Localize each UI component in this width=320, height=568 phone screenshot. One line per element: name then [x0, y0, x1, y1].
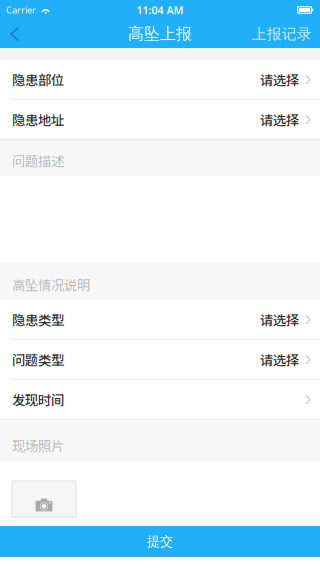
button[interactable]: 隐患地址: [0, 100, 320, 139]
button[interactable]: 发现时间: [0, 380, 320, 419]
staticText: 隐患部位: [12, 70, 64, 89]
staticText: 提交: [147, 533, 173, 550]
staticText: Carrier: [6, 4, 36, 16]
button[interactable]: 隐患类型: [0, 300, 320, 339]
staticText: 请选择: [260, 110, 299, 129]
button[interactable]: Back: [0, 20, 44, 48]
staticText: 请选择: [260, 70, 299, 89]
button[interactable]: 问题类型: [0, 340, 320, 379]
staticText: 隐患类型: [12, 310, 64, 329]
staticText: 11:04 AM: [136, 3, 183, 17]
staticText: 上报记录: [252, 25, 312, 43]
staticText: 隐患地址: [12, 110, 64, 129]
staticText: 问题描述: [12, 151, 64, 170]
staticText: 请选择: [260, 310, 299, 329]
staticText: 高坠上报: [128, 24, 192, 44]
staticText: 请选择: [260, 350, 299, 369]
button[interactable]: 隐患部位: [0, 60, 320, 99]
button[interactable]: Add photo: [12, 481, 76, 517]
button[interactable]: 提交: [0, 526, 320, 557]
staticText: 发现时间: [12, 390, 64, 409]
staticText: 问题类型: [12, 350, 64, 369]
staticText: 高坠情况说明: [12, 275, 90, 294]
button[interactable]: 上报记录: [182, 20, 320, 48]
staticText: 现场照片: [12, 436, 64, 455]
